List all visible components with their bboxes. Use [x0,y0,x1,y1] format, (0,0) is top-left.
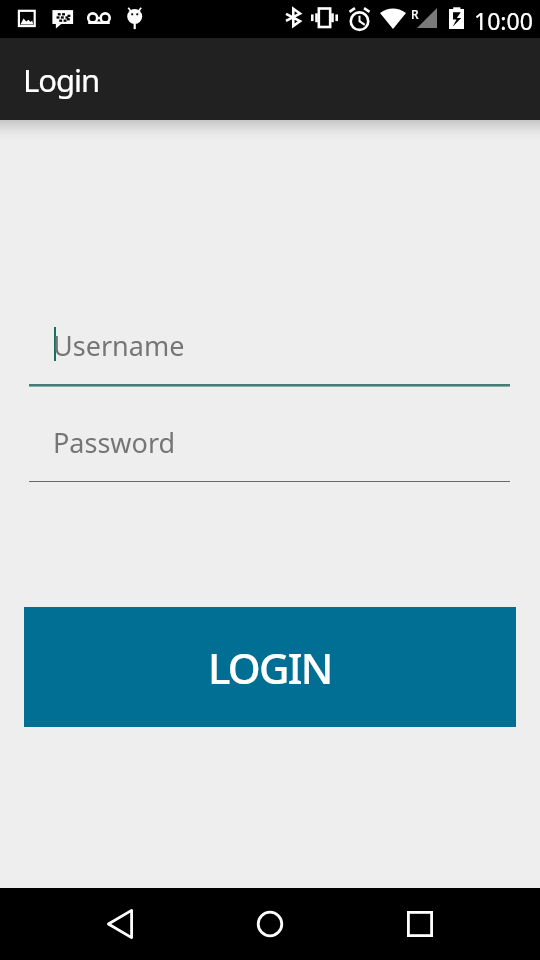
staticText: 10:00 [474,5,533,36]
button[interactable]: Recents [384,888,456,960]
button[interactable]: Back [84,888,156,960]
staticText: R [411,6,419,22]
staticText: Login [23,59,100,101]
staticText: Password [53,424,176,461]
staticText: Username [53,327,185,364]
button[interactable]: LOGIN [24,607,516,727]
button[interactable]: Username [29,318,510,387]
button[interactable]: Home [234,888,306,960]
staticText: LOGIN [208,639,332,696]
button[interactable]: Password [29,414,510,482]
